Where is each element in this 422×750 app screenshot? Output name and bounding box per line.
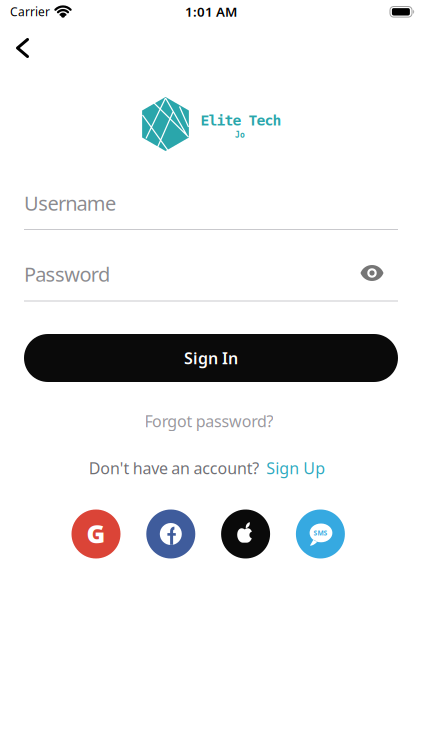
staticText: 1:01 AM	[185, 3, 237, 20]
staticText: Sign In	[184, 347, 238, 369]
staticText: Forgot password?	[144, 410, 273, 432]
staticText: Password	[24, 261, 110, 287]
staticText: Jo	[235, 130, 245, 140]
staticText: SMS	[313, 528, 327, 537]
staticText: Carrier	[10, 3, 50, 19]
staticText: Sign Up	[266, 457, 325, 479]
staticText: G	[86, 517, 105, 550]
staticText: Username	[24, 190, 116, 216]
staticText: Don't have an account?	[89, 457, 259, 479]
staticText: Elite Tech	[200, 112, 281, 129]
